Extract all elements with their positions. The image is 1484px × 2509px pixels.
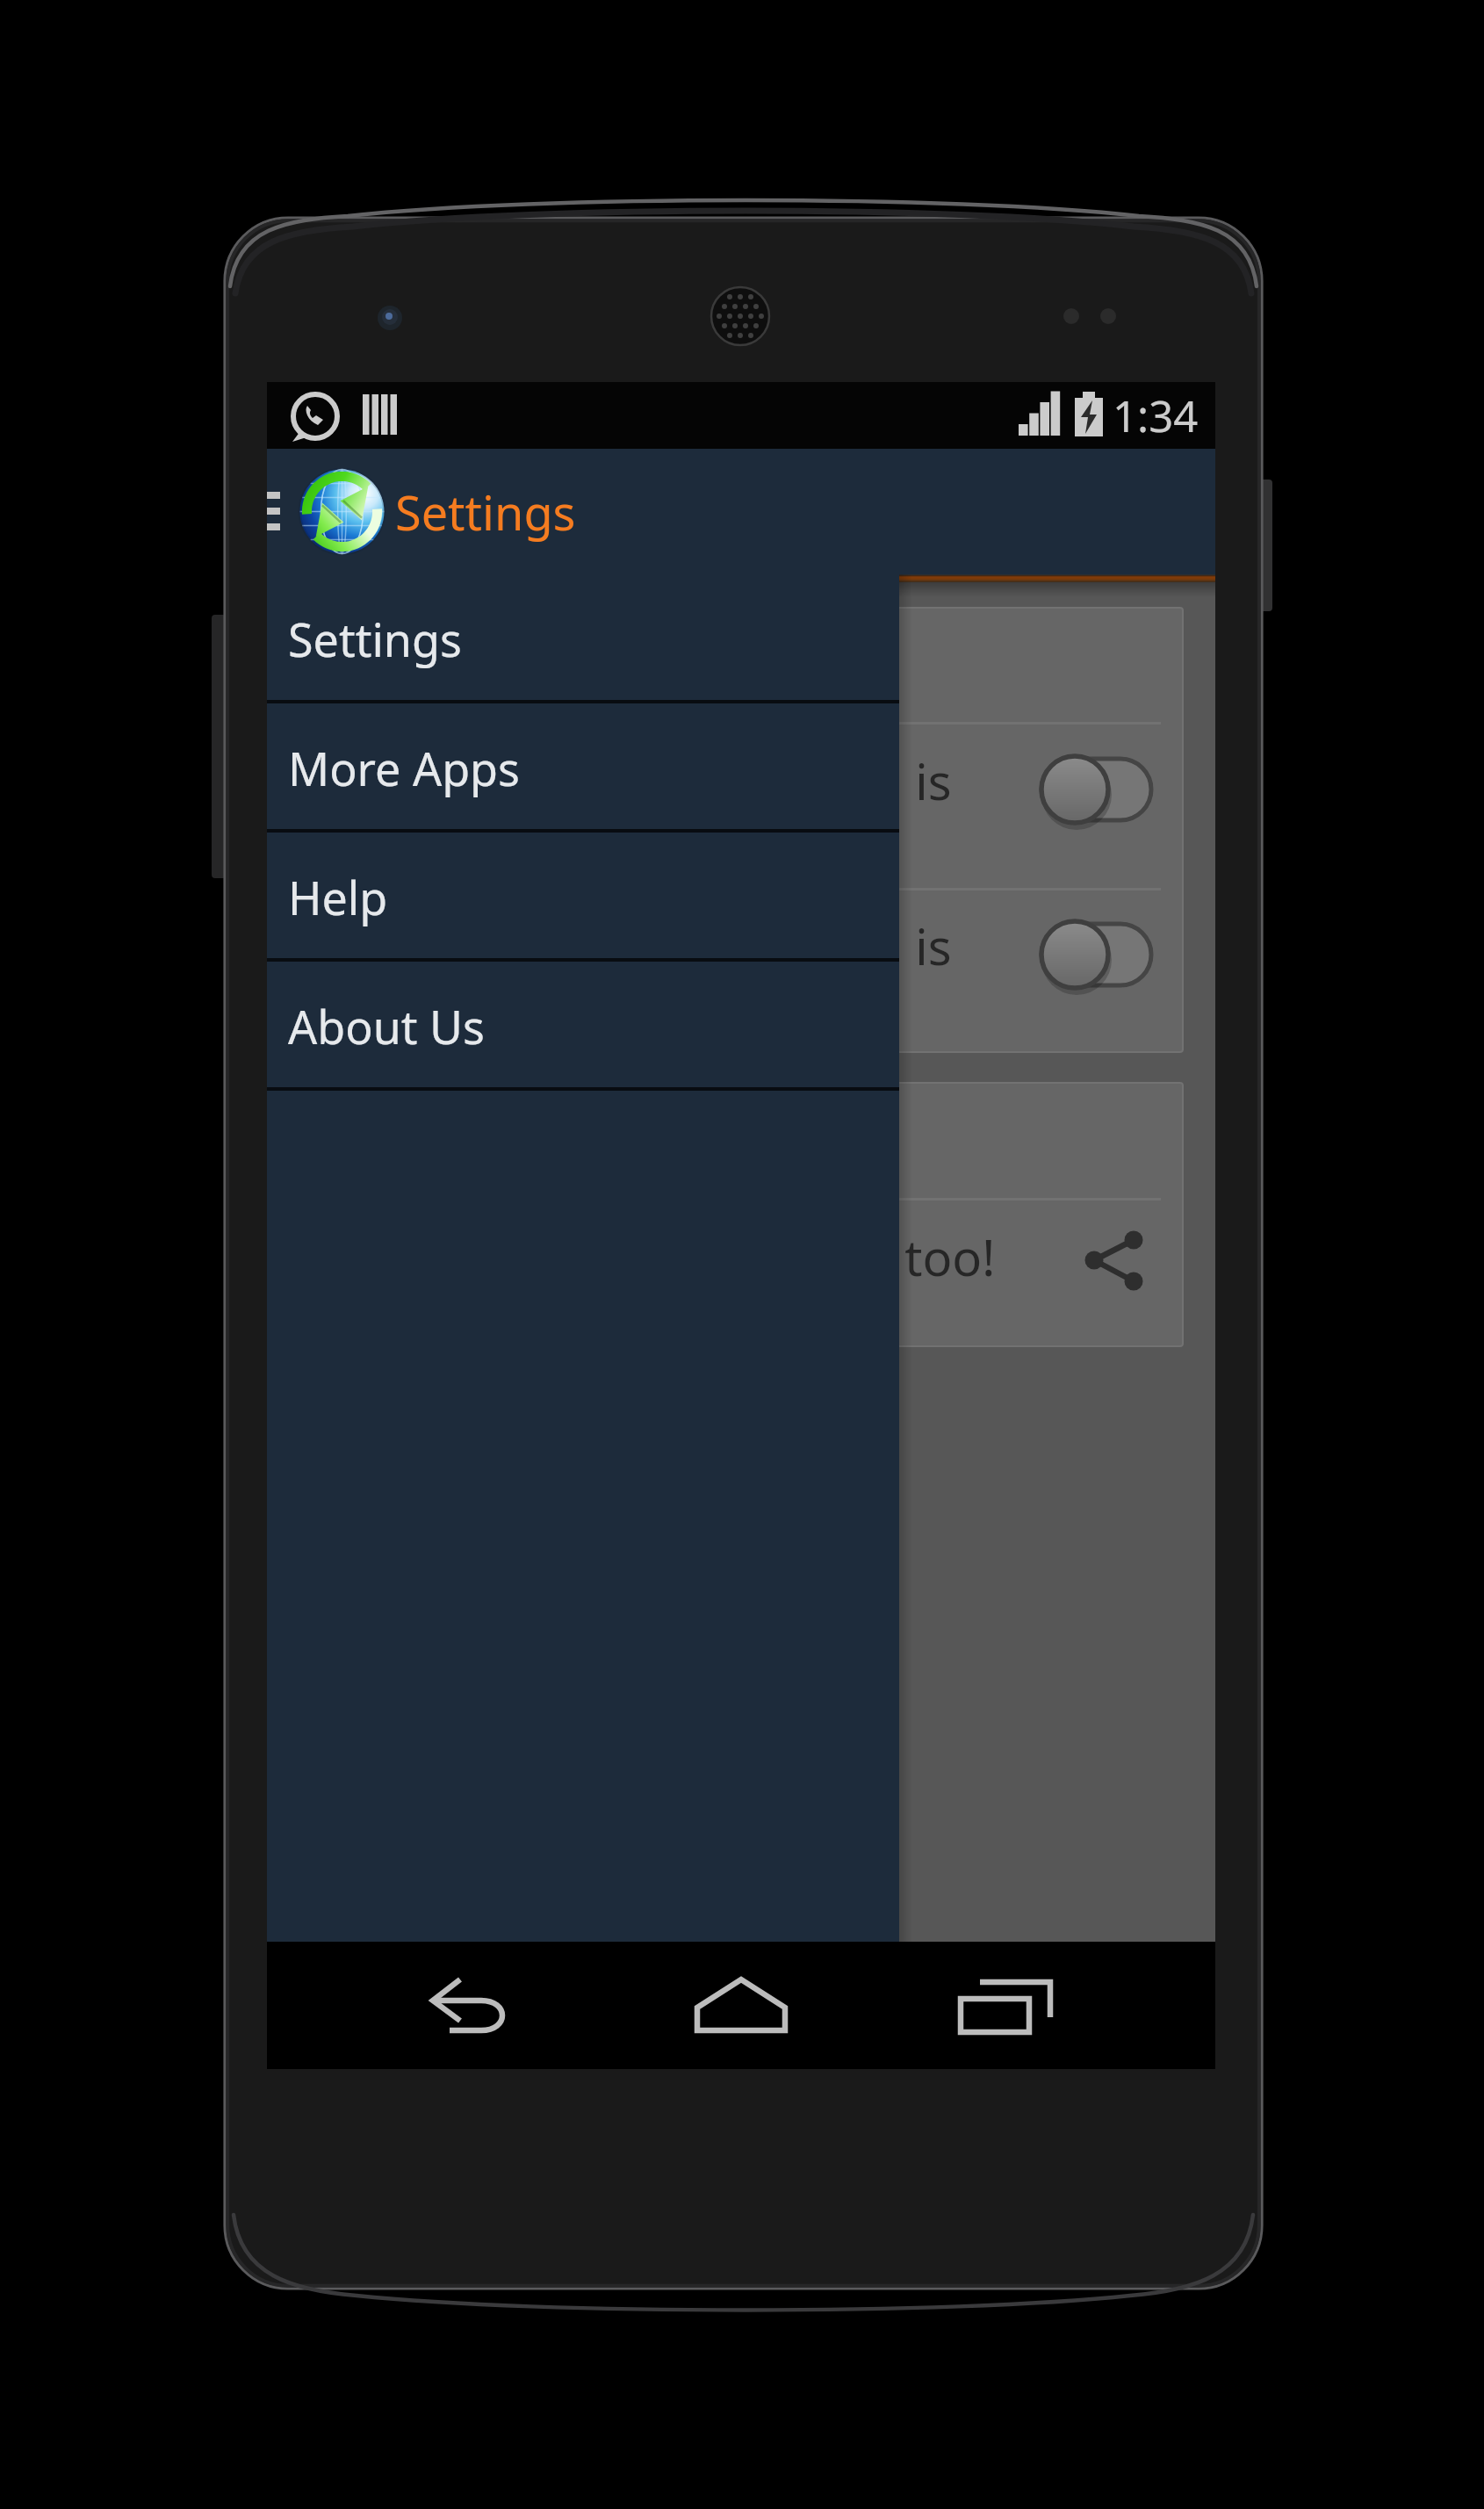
- button[interactable]: About Us: [267, 962, 899, 1091]
- staticText: More Apps: [288, 737, 521, 799]
- staticText: Help: [288, 866, 388, 928]
- button[interactable]: Toggle setting: [1035, 906, 1151, 985]
- button[interactable]: Back: [406, 1942, 546, 2069]
- button[interactable]: Toggle setting: [1035, 741, 1151, 820]
- button[interactable]: Recent apps: [936, 1942, 1077, 2069]
- button[interactable]: Settings: [267, 574, 899, 703]
- button[interactable]: Resume download when is: [299, 890, 1184, 1053]
- button[interactable]: Help: [267, 833, 899, 962]
- button[interactable]: [299, 607, 1184, 722]
- button[interactable]: You can tell your friends too!: [299, 1200, 1184, 1347]
- staticText: 1:34: [1113, 386, 1199, 445]
- staticText: Settings: [288, 608, 462, 670]
- button[interactable]: Open navigation drawer: [267, 449, 299, 574]
- button[interactable]: More Apps: [267, 703, 899, 833]
- staticText: Settings: [395, 479, 576, 544]
- staticText: You can tell your friends too!: [335, 1223, 996, 1290]
- button[interactable]: Home: [671, 1942, 811, 2069]
- button[interactable]: Share: [1084, 1221, 1151, 1293]
- staticText: Resume download when is: [335, 912, 952, 979]
- staticText: Resume download when is: [335, 747, 952, 814]
- button[interactable]: [299, 1082, 1184, 1198]
- staticText: About Us: [288, 995, 486, 1057]
- button[interactable]: Resume download when is: [299, 725, 1184, 888]
